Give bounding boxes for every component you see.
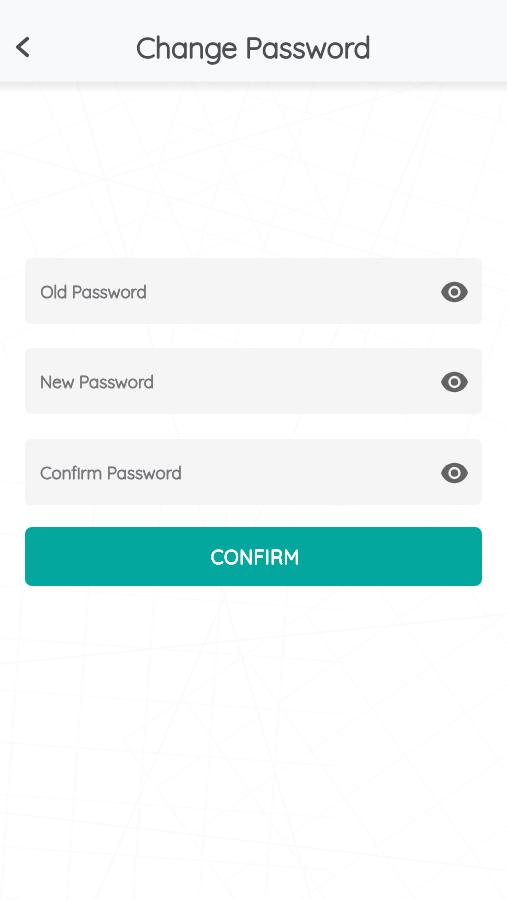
button[interactable]: Back (0, 19, 50, 75)
button[interactable]: Old Password (25, 258, 482, 324)
staticText: Old Password (40, 281, 147, 302)
staticText: Change Password (136, 29, 371, 65)
staticText: Change Password (136, 29, 371, 65)
staticText: CONFIRM (211, 545, 300, 568)
button[interactable]: Show password (436, 364, 472, 400)
button[interactable]: CONFIRM (25, 527, 482, 586)
staticText: Old Password (40, 281, 147, 302)
staticText: Confirm Password (40, 462, 182, 483)
staticText: Confirm Password (40, 462, 182, 483)
staticText: New Password (40, 371, 154, 392)
staticText: CONFIRM (211, 545, 300, 568)
button[interactable]: Show password (436, 455, 472, 491)
button[interactable]: Show password (436, 274, 472, 310)
staticText: New Password (40, 371, 154, 392)
button[interactable]: New Password (25, 348, 482, 414)
button[interactable]: Confirm Password (25, 439, 482, 505)
